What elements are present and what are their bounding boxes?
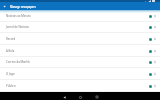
button[interactable]: Público — [0, 80, 160, 92]
staticText: Manage newspapers — [10, 5, 36, 9]
button[interactable]: Correio da Manhã — [0, 56, 160, 68]
staticText: Correio da Manhã — [6, 60, 149, 64]
button[interactable]: Back — [0, 2, 9, 10]
button[interactable]: Noticias ao Minuto — [0, 10, 160, 22]
staticText: A Bola — [6, 49, 149, 53]
staticText: Jornal de Noticias — [6, 25, 149, 29]
staticText: Record — [6, 37, 149, 41]
button[interactable]: O Jogo — [0, 68, 160, 80]
button[interactable]: Back — [61, 93, 68, 100]
button[interactable]: A Bola — [0, 45, 160, 57]
button[interactable]: Jornal de Noticias — [0, 21, 160, 33]
staticText: O Jogo — [6, 72, 149, 76]
staticText: Público — [6, 84, 149, 88]
button[interactable]: Home — [77, 93, 84, 100]
button[interactable]: Record — [0, 33, 160, 45]
staticText: Noticias ao Minuto — [6, 14, 149, 18]
button[interactable]: Recent apps — [93, 93, 100, 100]
